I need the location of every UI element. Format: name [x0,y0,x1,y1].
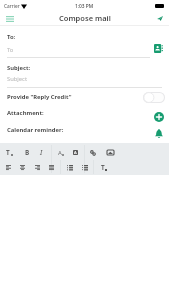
staticText: Carrier [4,3,20,10]
staticText: Attachment: [7,109,44,117]
button[interactable]: Choose contact [150,40,167,57]
button[interactable]: Send [152,12,168,25]
button[interactable]: Bold [21,146,34,159]
button[interactable]: Insert link [86,146,99,159]
button[interactable]: Numbered list [78,161,91,174]
staticText: To [7,46,14,54]
button[interactable]: Menu [1,12,18,25]
button[interactable]: Text colour [54,146,67,159]
button[interactable]: Set calendar reminder [150,125,167,142]
staticText: To: [7,33,16,41]
button[interactable]: Add attachment [150,108,167,125]
staticText: Subject [7,75,27,83]
button[interactable]: Highlight colour [69,146,82,159]
staticText: Provide "Reply Credit" [7,93,72,101]
staticText: Calendar reminder: [7,126,64,134]
button[interactable]: Align center [16,161,29,174]
button[interactable]: Bulleted list [63,161,76,174]
button[interactable]: Align left [2,161,15,174]
button[interactable]: Justify [45,161,58,174]
staticText: 1:03 PM [75,3,94,10]
button[interactable]: Insert image [104,146,117,159]
staticText: Subject: [7,64,31,72]
staticText: T [101,163,105,172]
staticText: A [58,149,62,157]
button[interactable]: Provide Reply Credit toggle [143,92,165,103]
staticText: I [40,148,43,157]
button[interactable]: Clear formatting [97,161,110,174]
button[interactable]: Align right [31,161,44,174]
staticText: Compose mail [59,13,111,23]
staticText: A [74,150,77,155]
staticText: B [25,148,30,157]
staticText: T [6,148,10,157]
button[interactable]: Text size [2,146,15,159]
button[interactable]: Italic [35,146,48,159]
